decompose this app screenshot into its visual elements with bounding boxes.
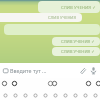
staticText: СЛИВ УЧЕНИЯ ✓ — [61, 4, 96, 10]
staticText: Введите тут ... — [10, 67, 47, 74]
button[interactable]: Emoji 6 — [93, 78, 100, 88]
button[interactable]: Emoji 13 — [20, 90, 30, 100]
button[interactable]: Emoji 12 — [10, 90, 20, 100]
button[interactable]: Emoji 18 — [70, 90, 80, 100]
button[interactable]: Emoji 16 — [50, 90, 60, 100]
button[interactable]: Emoji 3 — [45, 78, 55, 88]
button[interactable]: Emoji 14 — [30, 90, 40, 100]
button[interactable]: Record voice message — [88, 65, 99, 76]
button[interactable]: Attach file — [77, 65, 88, 76]
button[interactable]: СЛИВ УЧЕНИЯ — [0, 13, 82, 22]
button[interactable]: СЛИВ УЧЕНИЯ ✓ — [52, 37, 100, 46]
staticText: СЛИВ УЧЕНИЯ — [48, 15, 76, 20]
button[interactable]: Emoji 2 — [9, 78, 19, 88]
button[interactable]: Emoji 11 — [0, 90, 10, 100]
button[interactable] — [4, 24, 100, 35]
button[interactable]: Emoji 19 — [80, 90, 90, 100]
button[interactable]: Emoji 1 — [0, 78, 9, 88]
button[interactable]: СЛИВ УЧЕНИЯ ✓ — [38, 1, 100, 13]
button[interactable]: Emoji 17 — [60, 90, 70, 100]
staticText: СЛИВ УЧЕНИЯ ✓ — [61, 39, 95, 45]
button[interactable]: СЛИВ УЧЕНИЯ ✓ — [52, 47, 100, 56]
button[interactable]: Stickers — [1, 66, 10, 75]
button[interactable]: Emoji 15 — [40, 90, 50, 100]
button[interactable]: Emoji 20 — [90, 90, 100, 100]
button[interactable]: Emoji 5 — [83, 78, 93, 88]
button[interactable]: Emoji 4 — [49, 78, 59, 88]
staticText: СЛИВ УЧЕНИЯ ✓ — [61, 49, 95, 55]
